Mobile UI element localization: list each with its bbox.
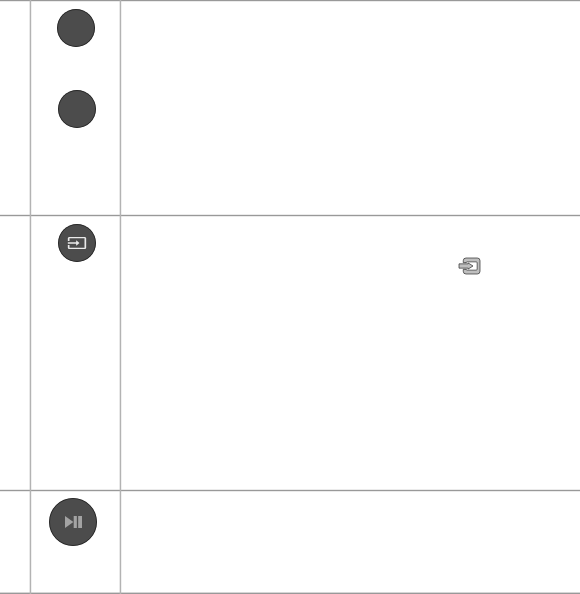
button[interactable]: Filled icon button <box>57 9 95 47</box>
button[interactable]: Filled icon button <box>58 90 96 128</box>
button[interactable]: Play or pause <box>49 498 97 546</box>
other: Input <box>459 258 480 274</box>
button[interactable]: Input <box>58 224 96 262</box>
